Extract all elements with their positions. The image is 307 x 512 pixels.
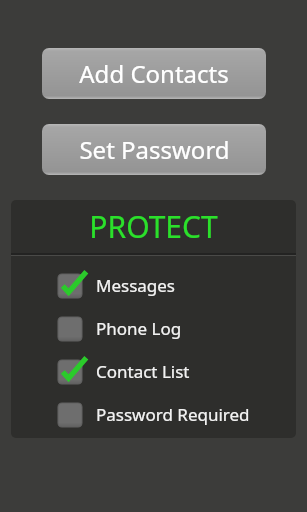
button[interactable]: Add Contacts: [42, 48, 266, 99]
staticText: Phone Log: [96, 317, 182, 340]
staticText: Set Password: [79, 133, 230, 166]
button[interactable]: Unchecked: [11, 307, 296, 350]
other: Unchecked: [58, 400, 88, 430]
staticText: Add Contacts: [79, 57, 229, 90]
button[interactable]: Unchecked: [11, 393, 296, 436]
staticText: Contact List: [96, 360, 190, 383]
staticText: Messages: [96, 274, 176, 297]
other: Unchecked: [58, 314, 88, 344]
other: Checked: [58, 271, 88, 301]
staticText: PROTECT: [89, 206, 218, 247]
button[interactable]: Set Password: [42, 124, 266, 175]
button[interactable]: Checked: [11, 350, 296, 393]
other: Checked: [58, 357, 88, 387]
button[interactable]: Checked: [11, 264, 296, 307]
staticText: Password Required: [96, 403, 250, 426]
